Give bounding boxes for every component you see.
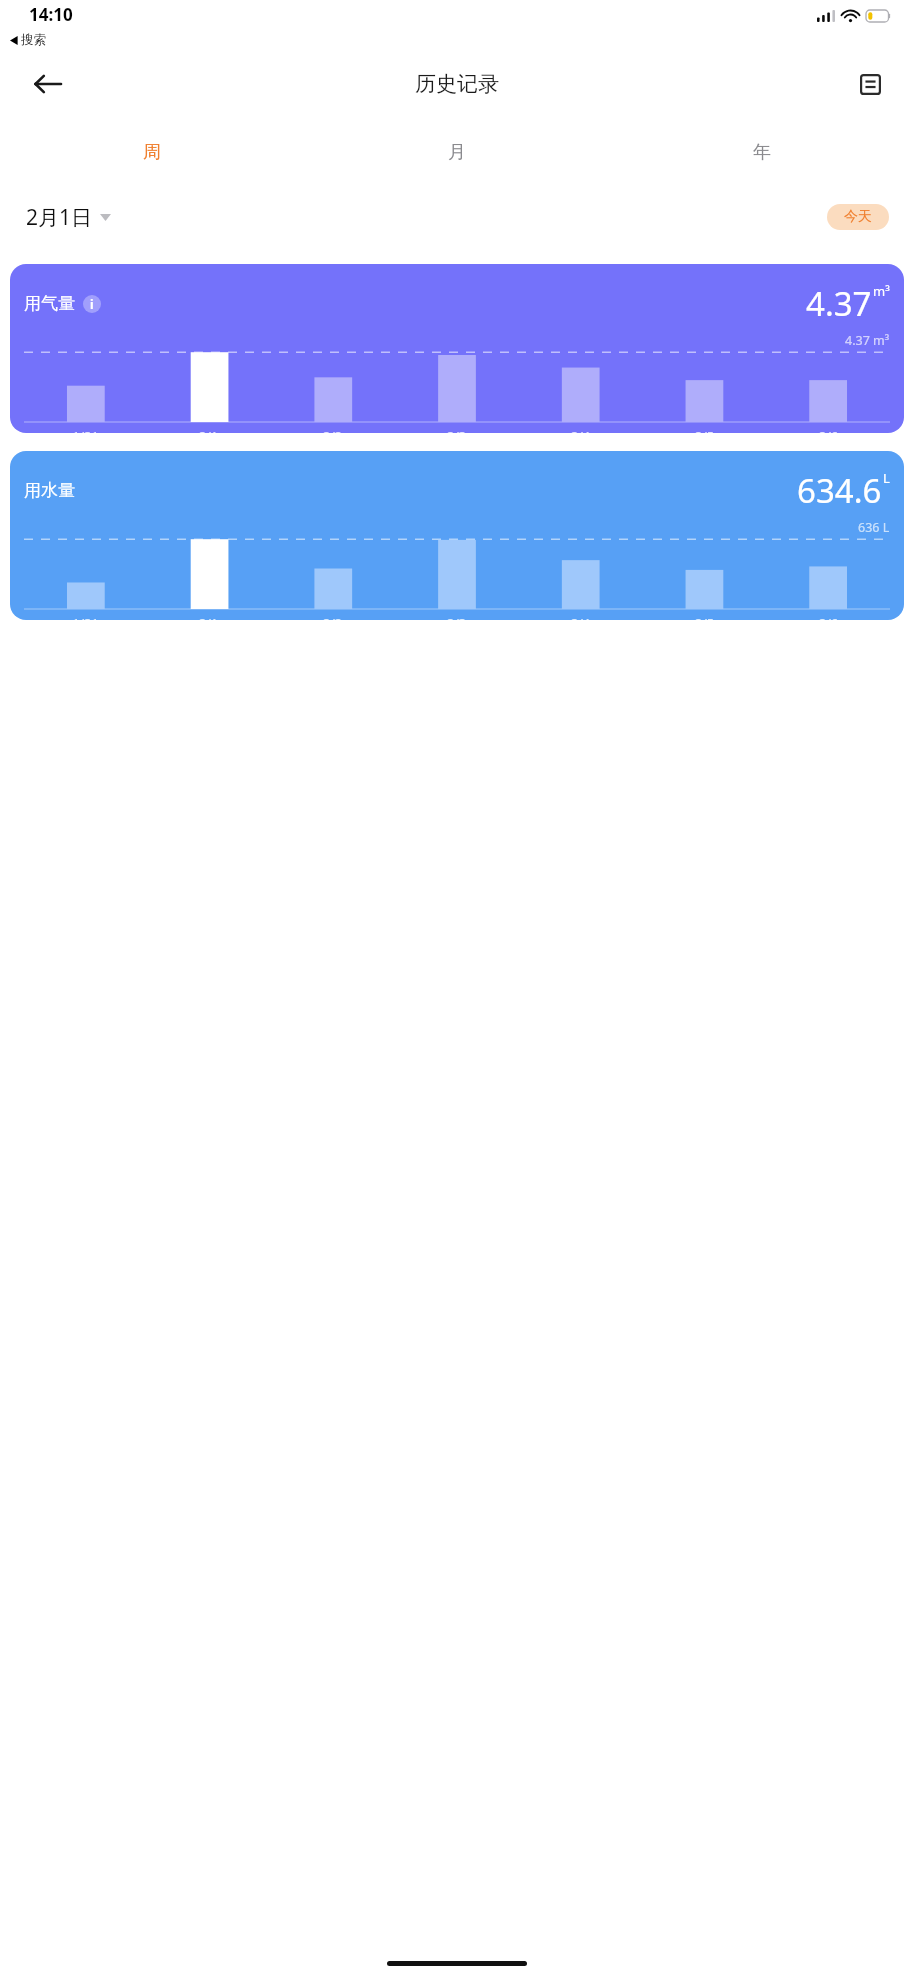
staticText: 2/4 [571, 615, 590, 620]
staticText: 1/31 [72, 615, 99, 620]
staticText: 14:10 [29, 3, 73, 26]
staticText: 2/4 [571, 428, 590, 433]
staticText: 2/5 [695, 428, 714, 433]
button[interactable]: 2月1日 [26, 203, 111, 232]
button[interactable]: 用气量 [10, 264, 904, 433]
staticText: 2/5 [695, 615, 714, 620]
staticText: 月 [448, 141, 466, 164]
button[interactable]: 周 [0, 119, 304, 185]
staticText: 2/2 [323, 615, 342, 620]
button[interactable]: 说明 [83, 295, 101, 313]
staticText: 2/6 [819, 615, 838, 620]
staticText: m³ [873, 282, 890, 300]
button[interactable]: 返回 [24, 60, 72, 108]
staticText: 4.37 m³ [845, 332, 890, 349]
staticText: 636 L [858, 519, 890, 536]
button[interactable]: 菜单 [848, 62, 892, 106]
staticText: 634.6 [797, 468, 882, 513]
button[interactable]: 用水量 [10, 451, 904, 620]
staticText: 年 [753, 141, 771, 164]
staticText: 历史记录 [415, 71, 499, 97]
staticText: 2/3 [447, 615, 466, 620]
button[interactable]: 月 [304, 119, 609, 185]
button[interactable]: 今天 [827, 204, 889, 230]
staticText: 2/2 [323, 428, 342, 433]
staticText: 今天 [844, 208, 872, 226]
staticText: 1/31 [72, 428, 99, 433]
staticText: 2/6 [819, 428, 838, 433]
staticText: 周 [143, 141, 161, 164]
staticText: i [90, 296, 94, 312]
staticText: 用气量 [24, 293, 75, 314]
staticText: 2/1 [199, 615, 218, 620]
staticText: 2/1 [199, 428, 218, 433]
staticText: 2/3 [447, 428, 466, 433]
staticText: 4.37 [806, 281, 872, 326]
staticText: 搜索 [21, 32, 46, 48]
button[interactable]: 年 [609, 119, 914, 185]
staticText: 用水量 [24, 480, 75, 501]
staticText: L [883, 469, 890, 487]
staticText: 2月1日 [26, 203, 93, 232]
